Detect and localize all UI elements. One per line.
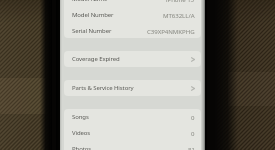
button[interactable]: Photos [64,141,201,150]
staticText: iPhone 15 [166,0,195,3]
staticText: 0 [191,129,195,137]
button[interactable]: Model Name [64,0,201,7]
other: Open [191,85,195,92]
button[interactable]: Songs [64,109,201,125]
staticText: Model Number [72,11,114,19]
staticText: C39XP4NMKPHG [147,27,195,35]
button[interactable]: Serial Number [64,23,201,38]
staticText: Photos [72,145,92,150]
staticText: Coverage Expired [72,55,120,63]
staticText: Songs [72,113,89,121]
staticText: Parts & Service History [72,84,134,92]
button[interactable]: Parts & Service History [64,80,201,96]
staticText: Model Name [72,0,108,3]
staticText: 81 [188,145,195,150]
staticText: 0 [191,113,195,121]
staticText: Serial Number [72,27,112,35]
staticText: MT632LL/A [163,11,195,19]
other: Open [191,56,195,63]
staticText: Videos [72,129,91,137]
button[interactable]: Coverage Expired [64,51,201,67]
button[interactable]: Model Number [64,7,201,23]
button[interactable]: Videos [64,125,201,141]
